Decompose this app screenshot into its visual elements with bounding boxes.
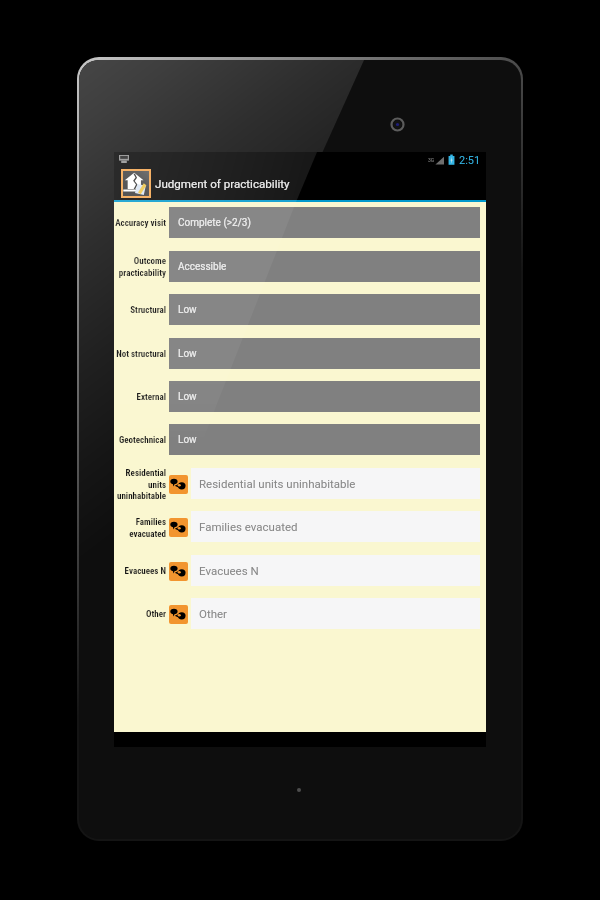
staticText: Families evacuated	[115, 517, 166, 539]
staticText: Accessible	[178, 261, 227, 273]
button[interactable]: Low	[169, 381, 480, 412]
staticText: Low	[178, 391, 197, 403]
staticText: Complete (>2/3)	[178, 217, 251, 229]
button[interactable]: Families evacuated	[191, 511, 480, 542]
button[interactable]: Add comment	[169, 518, 188, 537]
staticText: Other	[115, 609, 166, 620]
button[interactable]: Residential units uninhabitable	[191, 468, 480, 499]
button[interactable]: Accessible	[169, 251, 480, 282]
staticText: Outcome practicability	[115, 256, 166, 278]
staticText: Low	[178, 348, 197, 360]
staticText: Geotechnical	[115, 435, 166, 446]
staticText: Other	[199, 607, 228, 620]
staticText: Low	[178, 304, 197, 316]
button[interactable]: Add comment	[169, 475, 188, 494]
button[interactable]: Judgment of practicability	[114, 167, 486, 200]
staticText: Low	[178, 434, 197, 446]
staticText: Evacuees N	[115, 566, 166, 577]
staticText: Residential units uninhabitable	[199, 477, 356, 490]
button[interactable]: Low	[169, 338, 480, 369]
staticText: Evacuees N	[199, 564, 259, 577]
staticText: External	[115, 392, 166, 403]
button[interactable]: Low	[169, 294, 480, 325]
button[interactable]: Add comment	[169, 605, 188, 624]
staticText: 2:51	[459, 154, 481, 167]
staticText: Residential units uninhabitable	[115, 468, 166, 501]
button[interactable]: Complete (>2/3)	[169, 207, 480, 238]
staticText: Structural	[115, 305, 166, 316]
staticText: Judgment of practicability	[155, 177, 290, 191]
staticText: Families evacuated	[199, 520, 298, 533]
button[interactable]: Evacuees N	[191, 555, 480, 586]
staticText: Not structural	[115, 349, 166, 360]
button[interactable]: Add comment	[169, 562, 188, 581]
staticText: 3G	[428, 157, 435, 163]
button[interactable]: Other	[191, 598, 480, 629]
staticText: Accuracy visit	[115, 218, 166, 229]
button[interactable]: Low	[169, 424, 480, 455]
